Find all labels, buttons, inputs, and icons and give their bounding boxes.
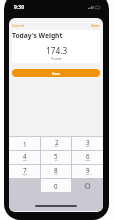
button[interactable]: Save <box>89 21 102 30</box>
staticText: WXYZ <box>85 173 91 176</box>
button[interactable]: Cancel <box>10 21 26 30</box>
staticText: JKL <box>55 159 58 162</box>
button[interactable]: 6 <box>72 151 103 164</box>
button[interactable]: 1 <box>9 137 40 150</box>
staticText: 7 <box>23 166 27 174</box>
staticText: DEF <box>86 145 90 148</box>
staticText: Cancel <box>12 23 24 28</box>
button[interactable]: 7 <box>9 165 40 178</box>
button[interactable]: 5 <box>41 151 71 164</box>
button[interactable]: 2 <box>41 137 71 150</box>
staticText: Today's Weight <box>12 31 63 40</box>
staticText: 9 <box>86 166 90 174</box>
other: Delete <box>83 183 92 189</box>
staticText: 174.3 <box>46 45 68 56</box>
button[interactable]: 3 <box>72 137 103 150</box>
button[interactable]: 9 <box>72 165 103 178</box>
staticText: Pounds <box>51 57 62 61</box>
staticText: GHI <box>23 159 27 162</box>
staticText: 5 <box>54 152 58 160</box>
staticText: Save <box>52 71 60 76</box>
staticText: Save <box>91 23 100 28</box>
staticText: 8 <box>54 166 58 174</box>
staticText: PQRS <box>22 173 28 176</box>
staticText: MNO <box>85 159 91 162</box>
button[interactable]: Save <box>12 69 100 77</box>
staticText: 1 <box>23 140 27 148</box>
button[interactable]: 4 <box>9 151 40 164</box>
staticText: 2 <box>55 138 59 146</box>
button[interactable]: Delete <box>72 179 103 192</box>
staticText: 4 <box>23 152 27 160</box>
staticText: ABC <box>54 145 59 148</box>
staticText: 3 <box>86 138 90 146</box>
staticText: 9:30 <box>14 4 24 11</box>
button[interactable]: 0 <box>41 179 71 192</box>
staticText: TUV <box>54 173 58 176</box>
staticText: 0 <box>54 182 58 190</box>
button[interactable]: 8 <box>41 165 71 178</box>
staticText: 6 <box>86 152 90 160</box>
